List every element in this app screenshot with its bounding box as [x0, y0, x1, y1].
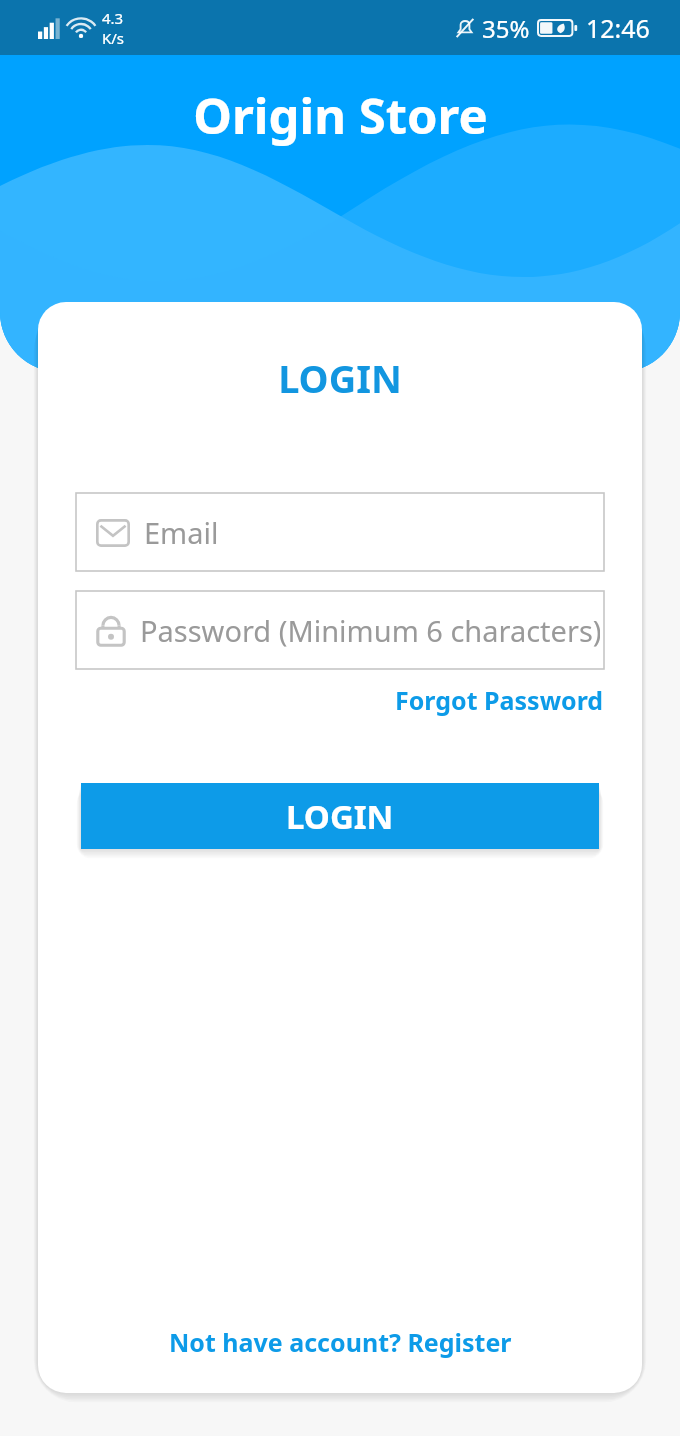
button[interactable]: Forgot Password — [395, 683, 604, 717]
staticText: 35% — [482, 12, 530, 45]
staticText: 4.3 — [102, 8, 124, 28]
staticText: 12:46 — [586, 11, 650, 45]
staticText: Forgot Password — [395, 683, 604, 717]
staticText: LOGIN — [38, 352, 642, 404]
staticText: Email — [144, 513, 219, 552]
staticText: Password (Minimum 6 characters) — [140, 611, 600, 650]
staticText: K/s — [102, 28, 125, 48]
button[interactable]: LOGIN — [81, 783, 599, 849]
button[interactable]: Not have account? Register — [163, 1321, 518, 1363]
staticText: LOGIN — [286, 794, 394, 839]
staticText: Not have account? Register — [169, 1325, 512, 1359]
staticText: Origin Store — [193, 82, 488, 149]
button[interactable]: Email — [76, 493, 604, 571]
button[interactable]: Password (Minimum 6 characters) — [76, 591, 604, 669]
